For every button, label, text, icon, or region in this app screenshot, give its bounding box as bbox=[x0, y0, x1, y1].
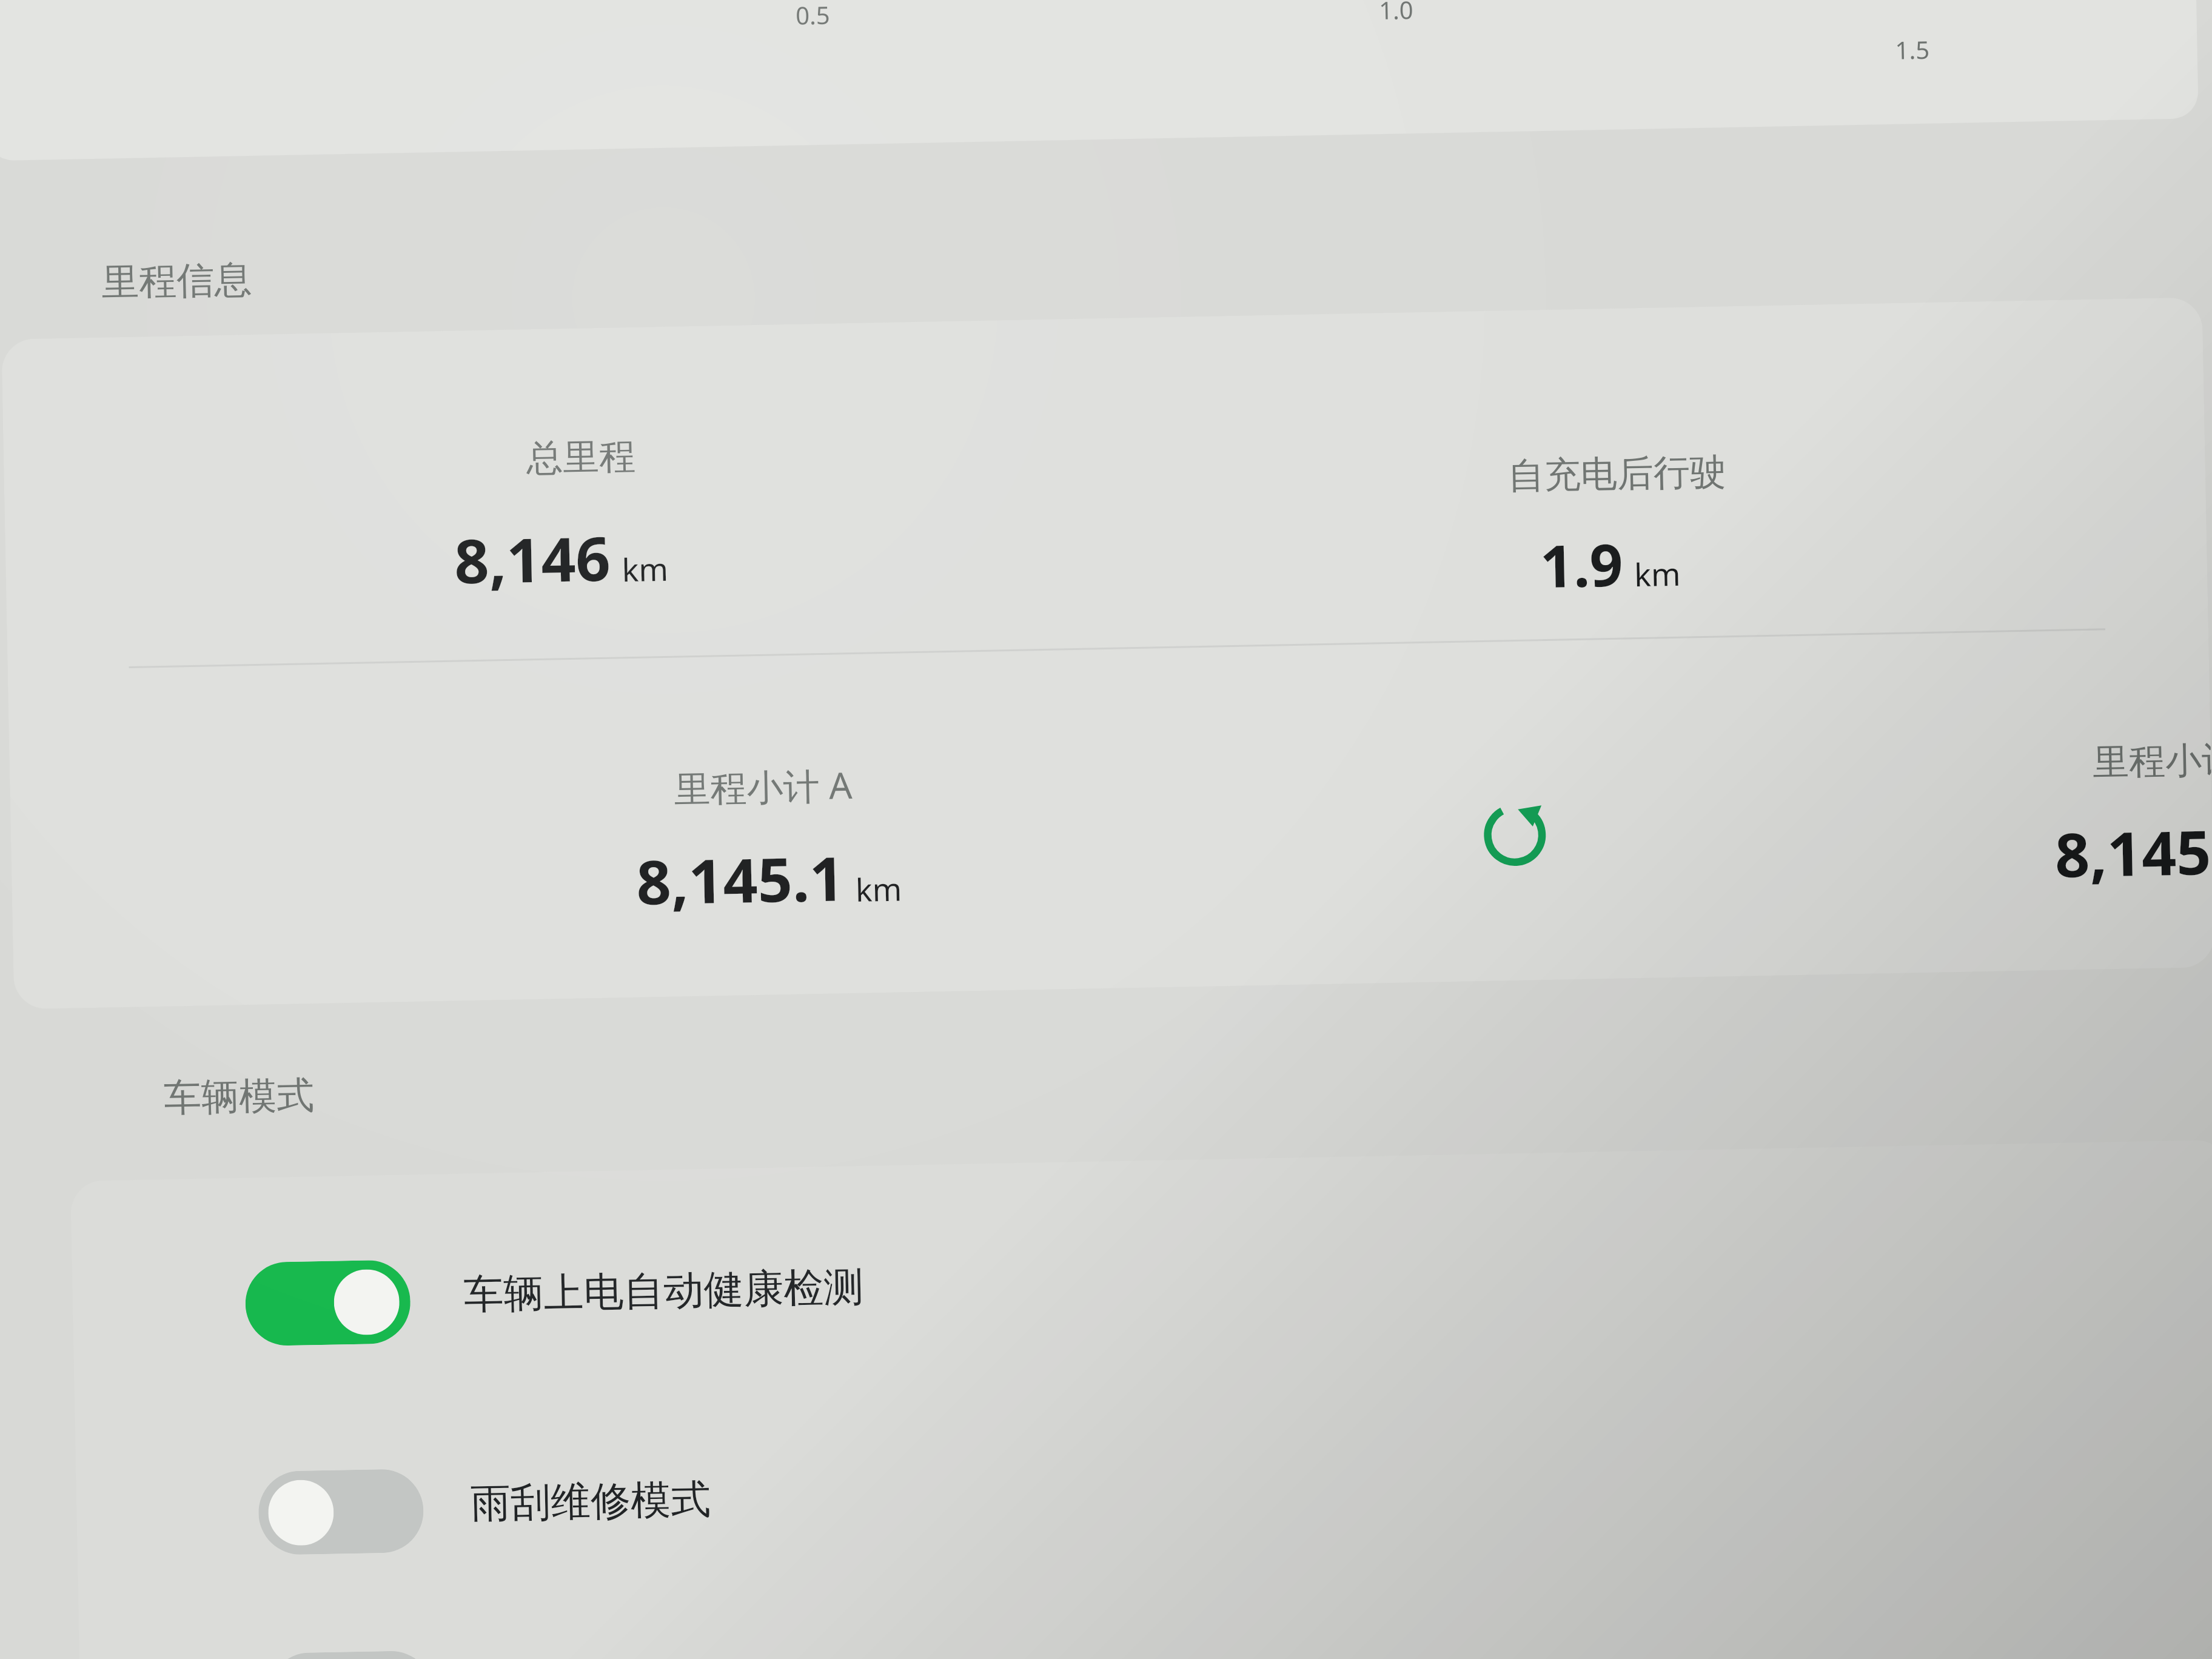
staticText: 8,145.1 bbox=[636, 836, 845, 922]
staticText: 车辆模式 bbox=[163, 1072, 315, 1122]
staticText: 1.9 bbox=[1539, 524, 1624, 605]
staticText: 1.5 bbox=[1895, 33, 1930, 66]
button[interactable]: 关闭 bbox=[258, 1468, 424, 1555]
staticText: 车辆上电自动健康检测 bbox=[463, 1262, 864, 1320]
staticText: km bbox=[1634, 552, 1681, 596]
staticText: 里程小计 A bbox=[674, 760, 853, 813]
staticText: 8,146 bbox=[454, 516, 612, 601]
staticText: 里程信息 bbox=[101, 256, 252, 306]
staticText: 总里程 bbox=[526, 433, 636, 482]
staticText: 雨刮维修模式 bbox=[470, 1474, 711, 1529]
button[interactable]: 开启 bbox=[245, 1260, 411, 1346]
staticText: km bbox=[621, 547, 669, 591]
staticText: 0.5 bbox=[795, 0, 830, 31]
staticText: km bbox=[855, 867, 903, 911]
button[interactable]: 关闭 bbox=[267, 1650, 433, 1659]
staticText: 里程小计 B bbox=[2092, 734, 2211, 786]
button[interactable]: 开启 bbox=[71, 1200, 2212, 1393]
button[interactable]: 关闭 bbox=[75, 1409, 2212, 1602]
staticText: 1.0 bbox=[1379, 0, 1414, 26]
staticText: 8,145.1 bbox=[2054, 809, 2212, 895]
button[interactable]: 关闭 bbox=[79, 1591, 2212, 1659]
button[interactable]: 重置里程小计 bbox=[1459, 779, 1570, 891]
staticText: 自充电后行驶 bbox=[1508, 449, 1727, 499]
